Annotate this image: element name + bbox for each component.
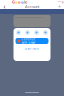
- staticText: o: [18, 0, 21, 5]
- button[interactable]: Action: [32, 30, 41, 36]
- staticText: Learn more: [24, 47, 39, 50]
- button[interactable]: Action: [23, 30, 32, 36]
- staticText: G: [12, 0, 15, 5]
- button[interactable]: Action: [14, 30, 23, 36]
- button[interactable]: Back: [1, 4, 8, 9]
- button[interactable]: Learn more: [23, 46, 40, 51]
- staticText: Account: [25, 4, 39, 9]
- staticText: ••• ▮: [58, 0, 63, 4]
- button[interactable]: Action: [41, 30, 50, 36]
- staticText: e: [25, 0, 27, 5]
- button[interactable]: Continue with email: [15, 38, 48, 44]
- button[interactable]: More: [56, 4, 63, 9]
- staticText: Continue with email: [21, 37, 35, 45]
- staticText: o: [15, 0, 18, 5]
- staticText: l: [24, 0, 25, 5]
- staticText: ‹: [3, 2, 5, 11]
- staticText: g: [21, 0, 24, 5]
